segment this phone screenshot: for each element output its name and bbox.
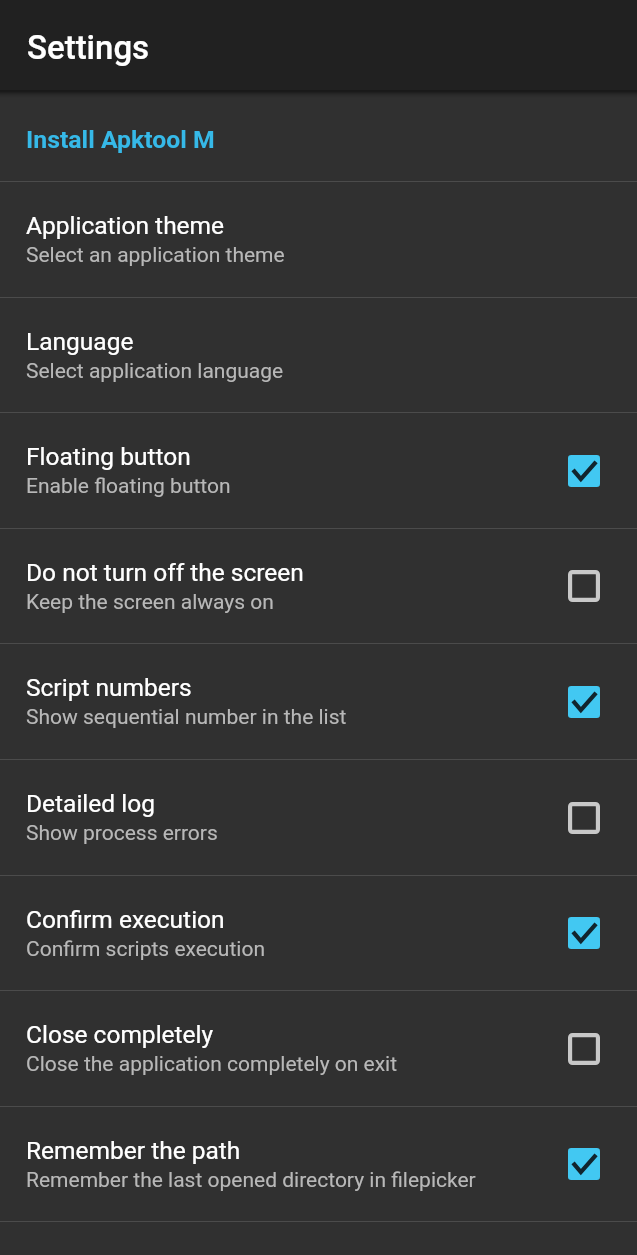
staticText: Do not turn off the screen xyxy=(26,558,304,587)
staticText: Language xyxy=(26,327,134,356)
button[interactable]: Install Apktool M xyxy=(0,98,637,181)
button[interactable]: Detailed log xyxy=(0,760,637,875)
staticText: Select application language xyxy=(26,359,284,384)
button[interactable]: Close completely xyxy=(0,991,637,1106)
staticText: Remember the last opened directory in fi… xyxy=(26,1168,476,1193)
staticText: Install Apktool M xyxy=(26,125,215,154)
staticText: Confirm scripts execution xyxy=(26,937,265,962)
staticText: Show sequential number in the list xyxy=(26,705,347,730)
staticText: Enable floating button xyxy=(26,474,231,499)
staticText: Confirm execution xyxy=(26,905,225,934)
button[interactable]: Setting enabled, checkbox checked xyxy=(568,455,600,487)
staticText: Show process errors xyxy=(26,821,218,846)
staticText: Close the application completely on exit xyxy=(26,1052,398,1077)
staticText: Settings xyxy=(27,28,150,67)
button[interactable]: Setting disabled, checkbox unchecked xyxy=(568,802,600,834)
button[interactable]: Application theme xyxy=(0,182,637,297)
button[interactable]: Floating button xyxy=(0,413,637,528)
staticText: Keep the screen always on xyxy=(26,590,274,615)
staticText: Close completely xyxy=(26,1020,214,1049)
button[interactable]: Confirm execution xyxy=(0,876,637,990)
button[interactable]: Setting disabled, checkbox unchecked xyxy=(568,570,600,602)
button[interactable]: Setting enabled, checkbox checked xyxy=(568,686,600,718)
button[interactable]: Script numbers xyxy=(0,644,637,759)
button[interactable]: Setting enabled, checkbox checked xyxy=(568,1148,600,1180)
button[interactable]: Do not turn off the screen xyxy=(0,529,637,643)
button[interactable]: Setting enabled, checkbox checked xyxy=(568,917,600,949)
staticText: Floating button xyxy=(26,442,191,471)
staticText: Script numbers xyxy=(26,673,192,702)
button[interactable]: Remember the path xyxy=(0,1107,637,1221)
button[interactable]: Setting disabled, checkbox unchecked xyxy=(568,1033,600,1065)
staticText: Detailed log xyxy=(26,789,155,818)
staticText: Select an application theme xyxy=(26,243,285,268)
staticText: Remember the path xyxy=(26,1136,241,1165)
staticText: Application theme xyxy=(26,211,225,240)
button[interactable]: Language xyxy=(0,298,637,412)
